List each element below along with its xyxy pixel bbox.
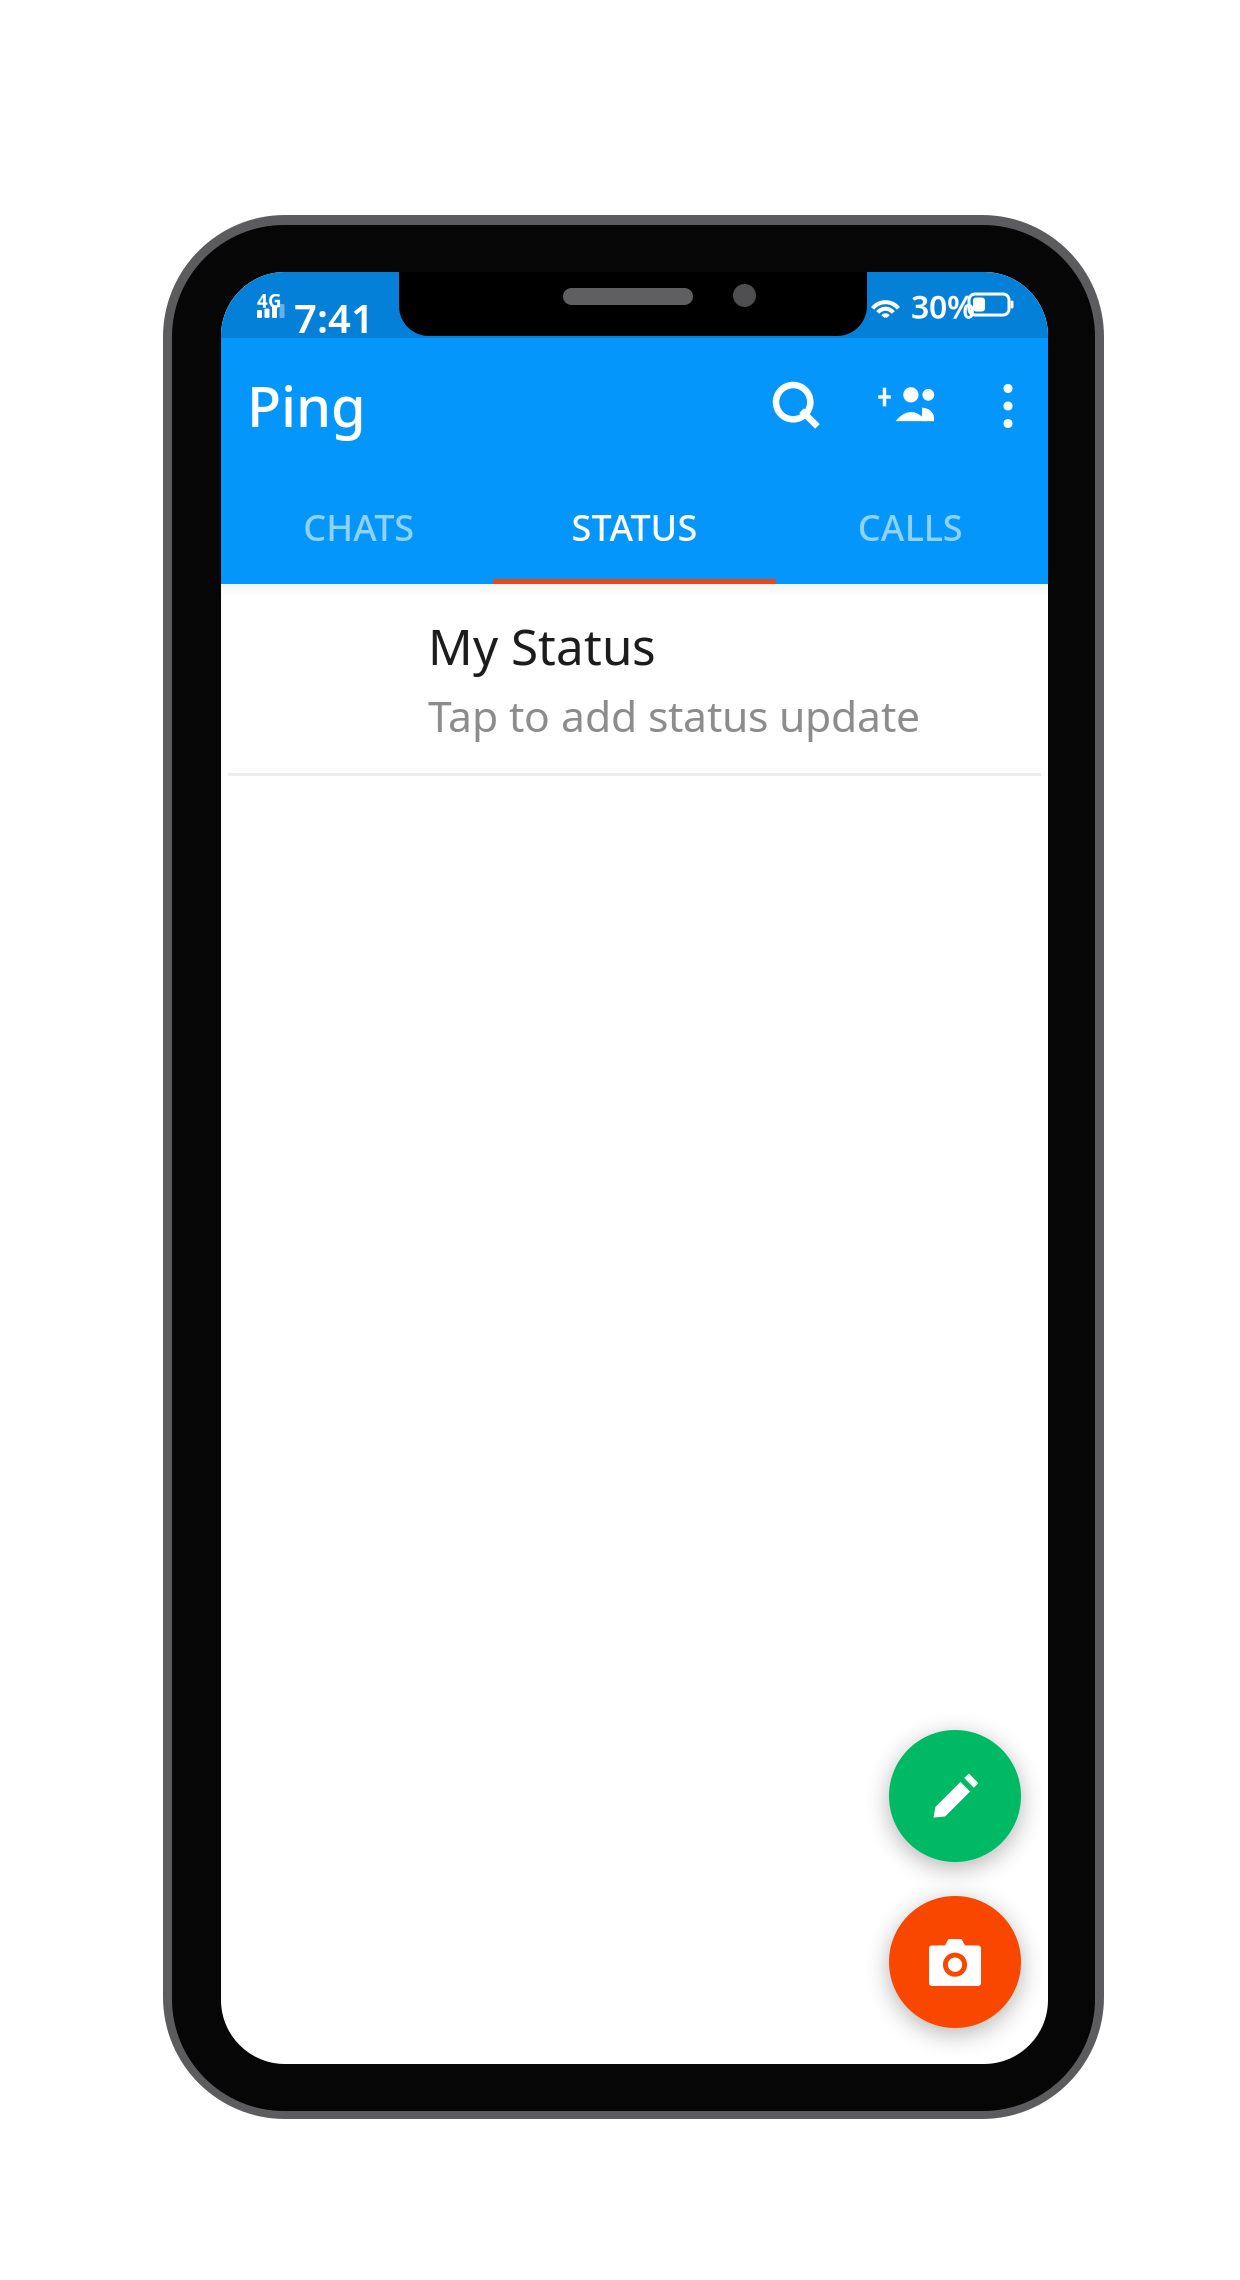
- staticText: My Status: [428, 613, 656, 678]
- button[interactable]: CHATS: [221, 488, 497, 566]
- staticText: STATUS: [571, 503, 697, 551]
- staticText: 4G: [257, 288, 282, 313]
- staticText: CHATS: [303, 503, 414, 551]
- button[interactable]: My Status: [221, 584, 1048, 776]
- staticText: 30%: [911, 285, 975, 327]
- button[interactable]: Write status: [889, 1730, 1021, 1862]
- button[interactable]: STATUS: [497, 488, 772, 566]
- staticText: CALLS: [858, 503, 963, 551]
- button[interactable]: New group: [857, 338, 951, 488]
- staticText: Ping: [247, 368, 366, 442]
- staticText: 7:41: [294, 291, 374, 344]
- button[interactable]: Search: [751, 338, 845, 488]
- staticText: Tap to add status update: [428, 687, 920, 744]
- button[interactable]: More options: [964, 338, 1052, 488]
- button[interactable]: CALLS: [772, 488, 1048, 566]
- button[interactable]: Camera: [889, 1896, 1021, 2028]
